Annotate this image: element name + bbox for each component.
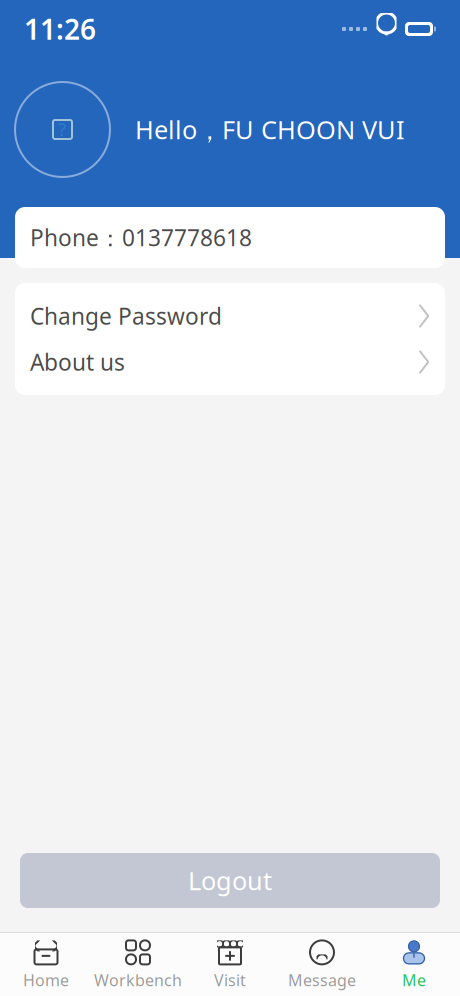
- button[interactable]: Me: [368, 934, 460, 994]
- staticText: Visit: [214, 969, 246, 991]
- staticText: 11:26: [24, 10, 96, 48]
- staticText: Me: [402, 969, 426, 991]
- staticText: Phone：0137778618: [30, 222, 252, 253]
- staticText: Hello，FU CHOON VUI: [135, 113, 405, 146]
- staticText: About us: [30, 347, 125, 377]
- staticText: Logout: [188, 864, 272, 897]
- button[interactable]: Change Password: [15, 293, 445, 339]
- staticText: ?: [58, 118, 66, 141]
- button[interactable]: Logout: [20, 853, 440, 908]
- staticText: Change Password: [30, 301, 222, 331]
- staticText: Home: [23, 969, 69, 991]
- staticText: Workbench: [94, 969, 182, 991]
- button[interactable]: Workbench: [92, 934, 184, 994]
- button[interactable]: Message: [276, 934, 368, 994]
- button[interactable]: Home: [0, 934, 92, 994]
- button[interactable]: Visit: [184, 934, 276, 994]
- button[interactable]: About us: [15, 339, 445, 385]
- staticText: Message: [288, 969, 356, 991]
